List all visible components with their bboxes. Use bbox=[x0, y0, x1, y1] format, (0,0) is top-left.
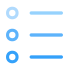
button[interactable]: Task 1 bbox=[6, 7, 63, 19]
button[interactable]: Task 2 bbox=[6, 29, 63, 41]
button[interactable]: Task 3 bbox=[6, 51, 63, 63]
